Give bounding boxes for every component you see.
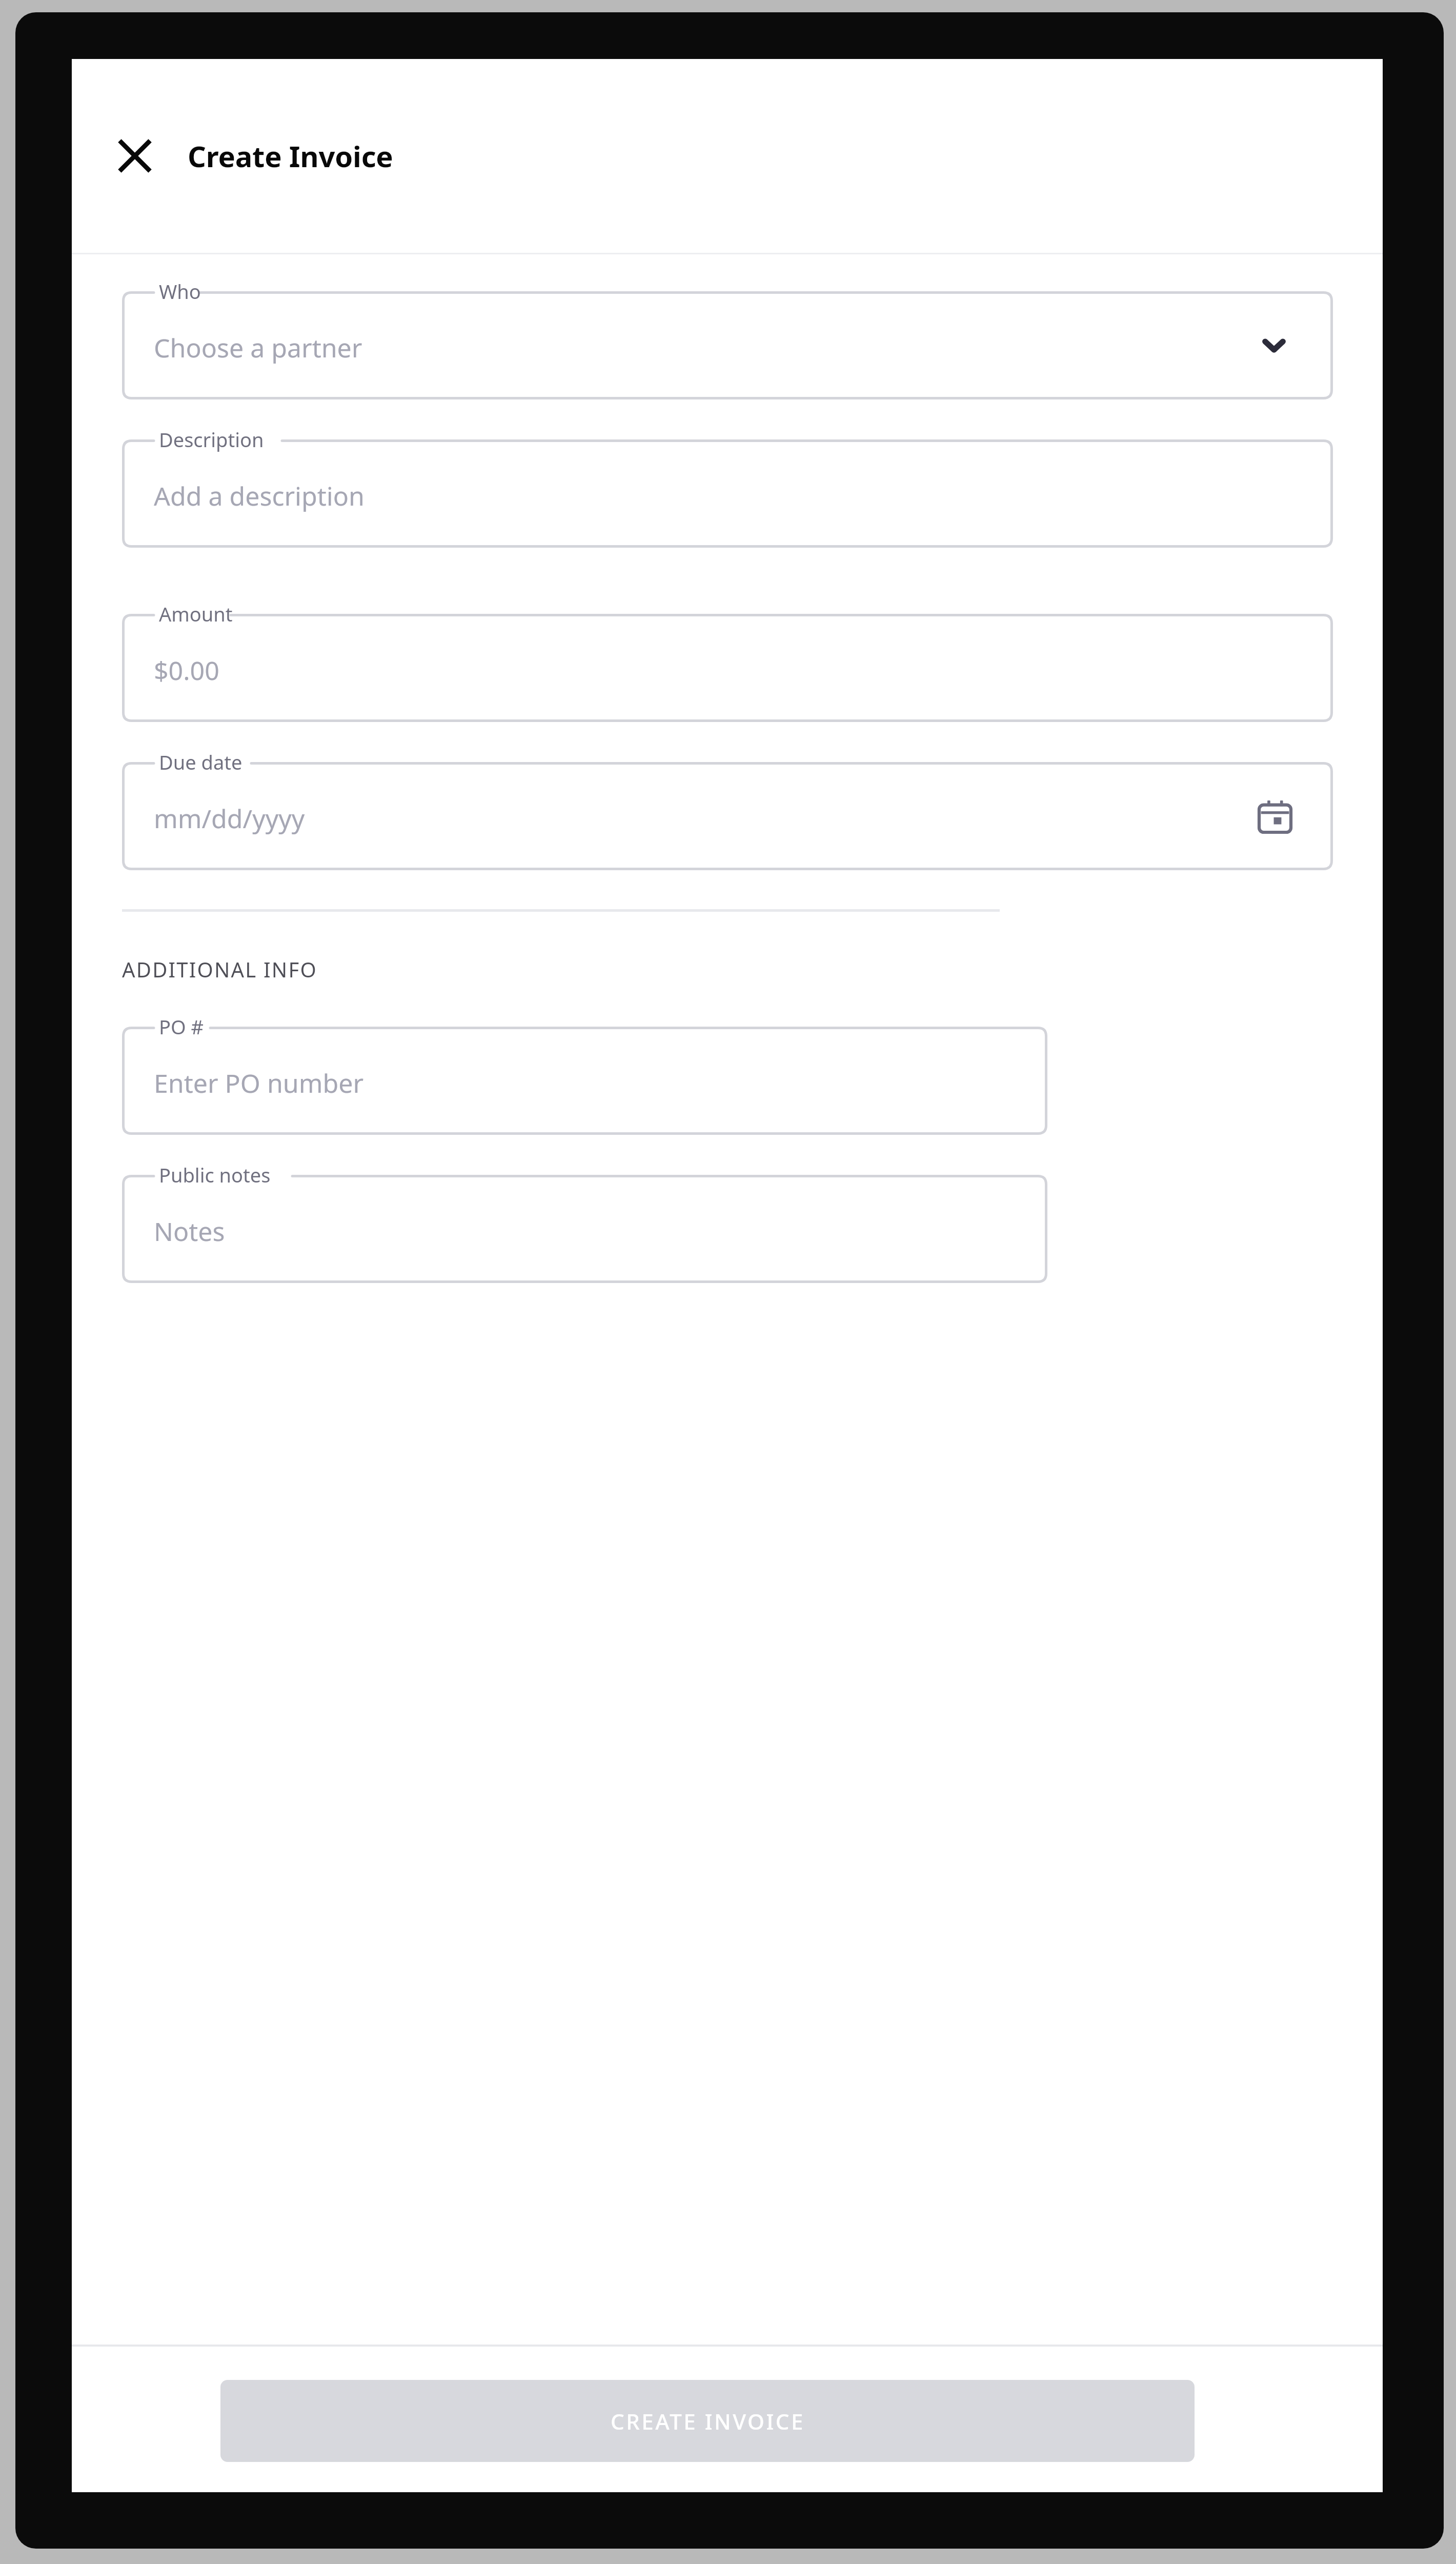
button[interactable]: Public notes	[122, 1175, 1047, 1283]
staticText: Create Invoice	[188, 136, 393, 175]
staticText: $0.00	[154, 653, 219, 688]
button[interactable]: CREATE INVOICE	[220, 2380, 1195, 2462]
staticText: Public notes	[159, 1161, 271, 1188]
button[interactable]: Who	[122, 291, 1333, 399]
button[interactable]: Open partner list	[1246, 317, 1302, 374]
button[interactable]: Close	[107, 128, 163, 184]
staticText: ADDITIONAL INFO	[122, 955, 317, 983]
staticText: Due date	[159, 749, 242, 775]
button[interactable]: PO #	[122, 1027, 1047, 1135]
staticText: Enter PO number	[154, 1066, 364, 1100]
button[interactable]: Due date	[122, 762, 1333, 870]
button[interactable]: Description	[122, 439, 1333, 548]
staticText: Choose a partner	[154, 330, 362, 365]
staticText: CREATE INVOICE	[611, 2407, 805, 2436]
staticText: Description	[159, 426, 264, 453]
button[interactable]: Pick due date	[1247, 788, 1303, 845]
staticText: Who	[159, 278, 201, 305]
staticText: mm/dd/yyyy	[154, 801, 305, 836]
staticText: PO #	[159, 1013, 204, 1040]
button[interactable]: Amount	[122, 614, 1333, 722]
staticText: Add a description	[154, 478, 365, 513]
staticText: Notes	[154, 1214, 225, 1249]
staticText: Amount	[159, 600, 233, 627]
